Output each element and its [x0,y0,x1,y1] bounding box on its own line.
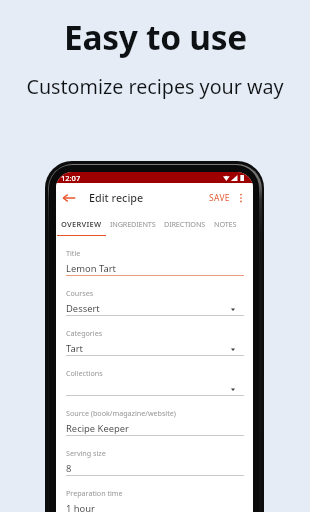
button[interactable]: DIRECTIONS [160,215,210,236]
staticText: Lemon Tart [66,262,116,275]
staticText: 8 [66,462,72,475]
staticText: Source (book/magazine/website) [66,408,176,418]
button[interactable]: Preparation time [66,476,244,512]
staticText: Recipe Keeper [66,422,129,435]
staticText: Dessert [66,302,100,315]
button[interactable]: Categories [66,316,244,356]
staticText: SAVE [209,192,230,203]
button[interactable]: NOTES [210,215,241,236]
staticText: 1 hour [66,502,95,512]
staticText: Preparation time [66,488,123,498]
button[interactable]: Serving size [66,436,244,476]
staticText: NOTES [214,219,237,229]
button[interactable]: Source (book/magazine/website) [66,396,244,436]
staticText: Categories [66,328,103,338]
staticText: Edit recipe [89,190,144,205]
button[interactable]: INGREDIENTS [106,215,160,236]
staticText: Courses [66,288,94,298]
staticText: Collections [66,368,103,378]
button[interactable]: SAVE [206,188,230,207]
button[interactable]: Back [60,189,78,207]
staticText: INGREDIENTS [110,219,156,229]
button[interactable]: Courses [66,276,244,316]
button[interactable]: Title [66,236,244,276]
staticText: OVERVIEW [61,219,102,229]
button[interactable]: Collections [66,356,244,396]
button[interactable]: More options [233,190,249,206]
staticText: Serving size [66,448,106,458]
button[interactable]: OVERVIEW [57,215,106,236]
staticText: Tart [66,342,84,355]
staticText: 12:07 [61,173,81,183]
staticText: Easy to use [64,14,247,60]
staticText: Customize recipes your way [26,73,284,100]
staticText: Title [66,248,81,258]
staticText: DIRECTIONS [164,219,206,229]
